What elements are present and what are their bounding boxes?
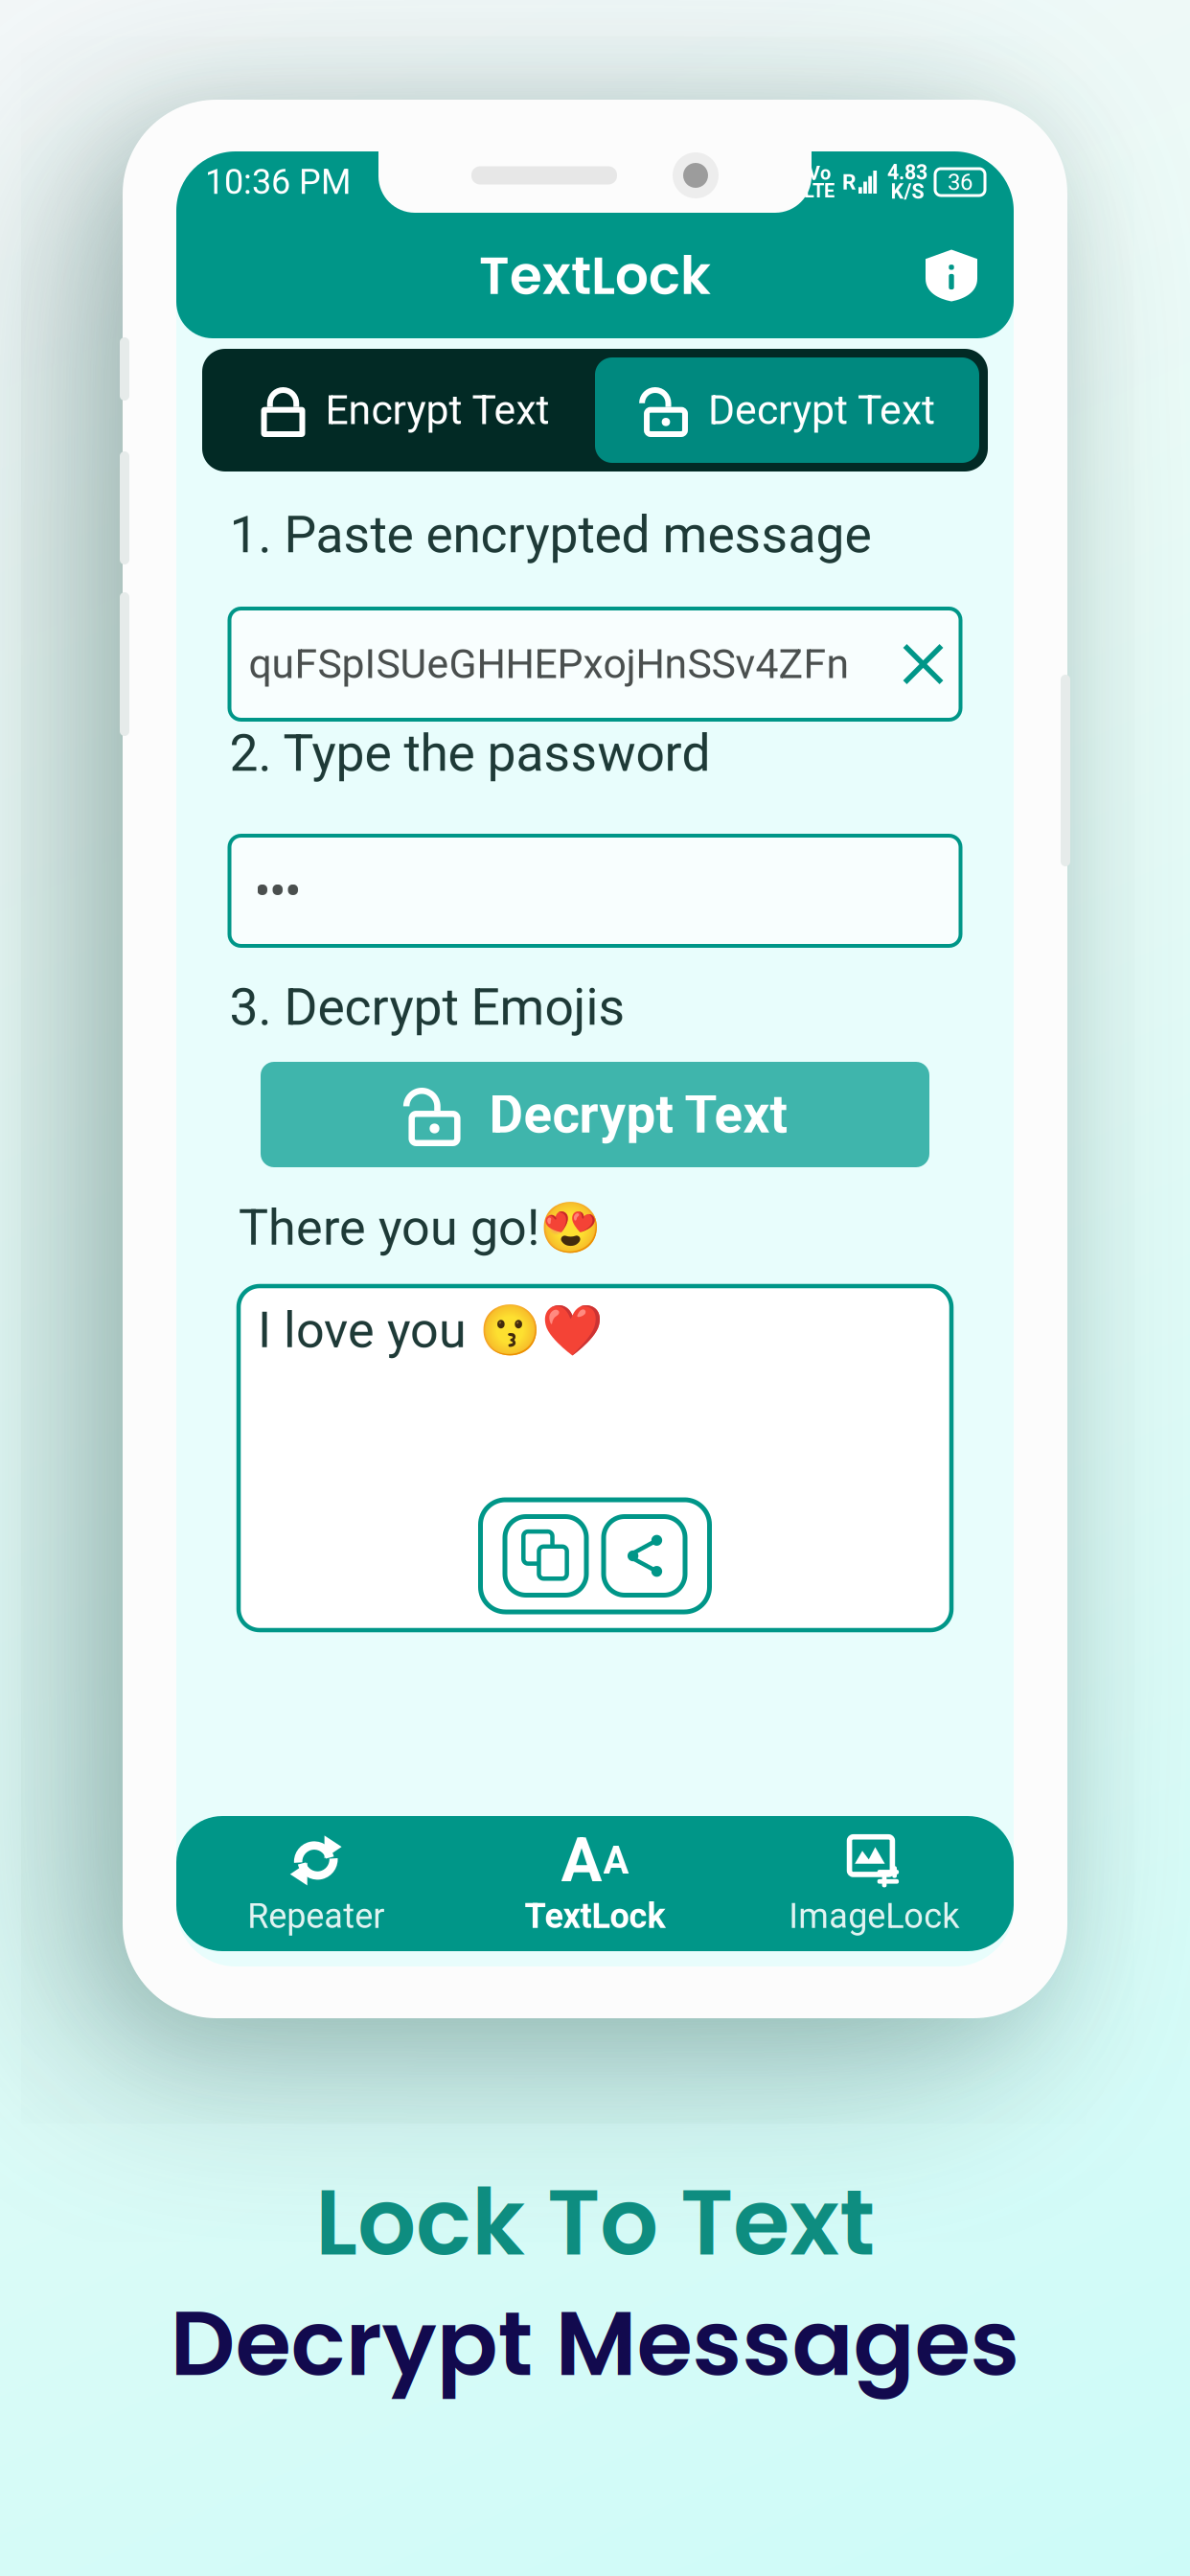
staticText: TextLock	[525, 1896, 665, 1936]
button[interactable]: Clear text	[905, 646, 941, 682]
staticText: 36	[948, 169, 973, 195]
button[interactable]: Copy text	[505, 1517, 586, 1595]
staticText: Decrypt Text	[708, 386, 935, 434]
staticText: Lock To Text	[315, 2158, 875, 2287]
staticText: quFSpISUeGHHEPxojHnSSv4ZFn	[249, 640, 849, 688]
staticText: 2. Type the password	[229, 723, 710, 783]
staticText: Decrypt Text	[489, 1084, 787, 1145]
button[interactable]: Share text	[604, 1517, 685, 1595]
button[interactable]: ImageLock	[735, 1825, 1014, 1942]
staticText: •••	[254, 865, 300, 916]
staticText: There you go!😍	[239, 1198, 602, 1257]
staticText: Decrypt Messages	[170, 2280, 1020, 2407]
button[interactable]: Encrypt Text	[211, 357, 595, 463]
staticText: 4.83	[887, 161, 927, 184]
staticText: R	[842, 169, 857, 195]
staticText: A	[603, 1838, 629, 1883]
staticText: LTE	[804, 180, 835, 202]
staticText: Vo	[808, 162, 831, 184]
staticText: Encrypt Text	[325, 386, 549, 434]
staticText: K/S	[891, 180, 924, 204]
button[interactable]: App information	[920, 244, 983, 307]
staticText: 3. Decrypt Emojis	[229, 977, 625, 1037]
staticText: TextLock	[479, 239, 711, 312]
button[interactable]: Decrypt Text	[261, 1062, 929, 1167]
staticText: 1. Paste encrypted message	[229, 505, 871, 565]
staticText: 10:36 PM	[205, 162, 351, 202]
staticText: A	[561, 1825, 602, 1896]
staticText: I love you 😗❤️	[258, 1301, 604, 1359]
button[interactable]: A	[455, 1825, 735, 1942]
button[interactable]: Decrypt Text	[595, 357, 979, 463]
button[interactable]: Repeater	[176, 1825, 455, 1942]
staticText: ImageLock	[789, 1896, 959, 1936]
staticText: Repeater	[247, 1896, 384, 1936]
